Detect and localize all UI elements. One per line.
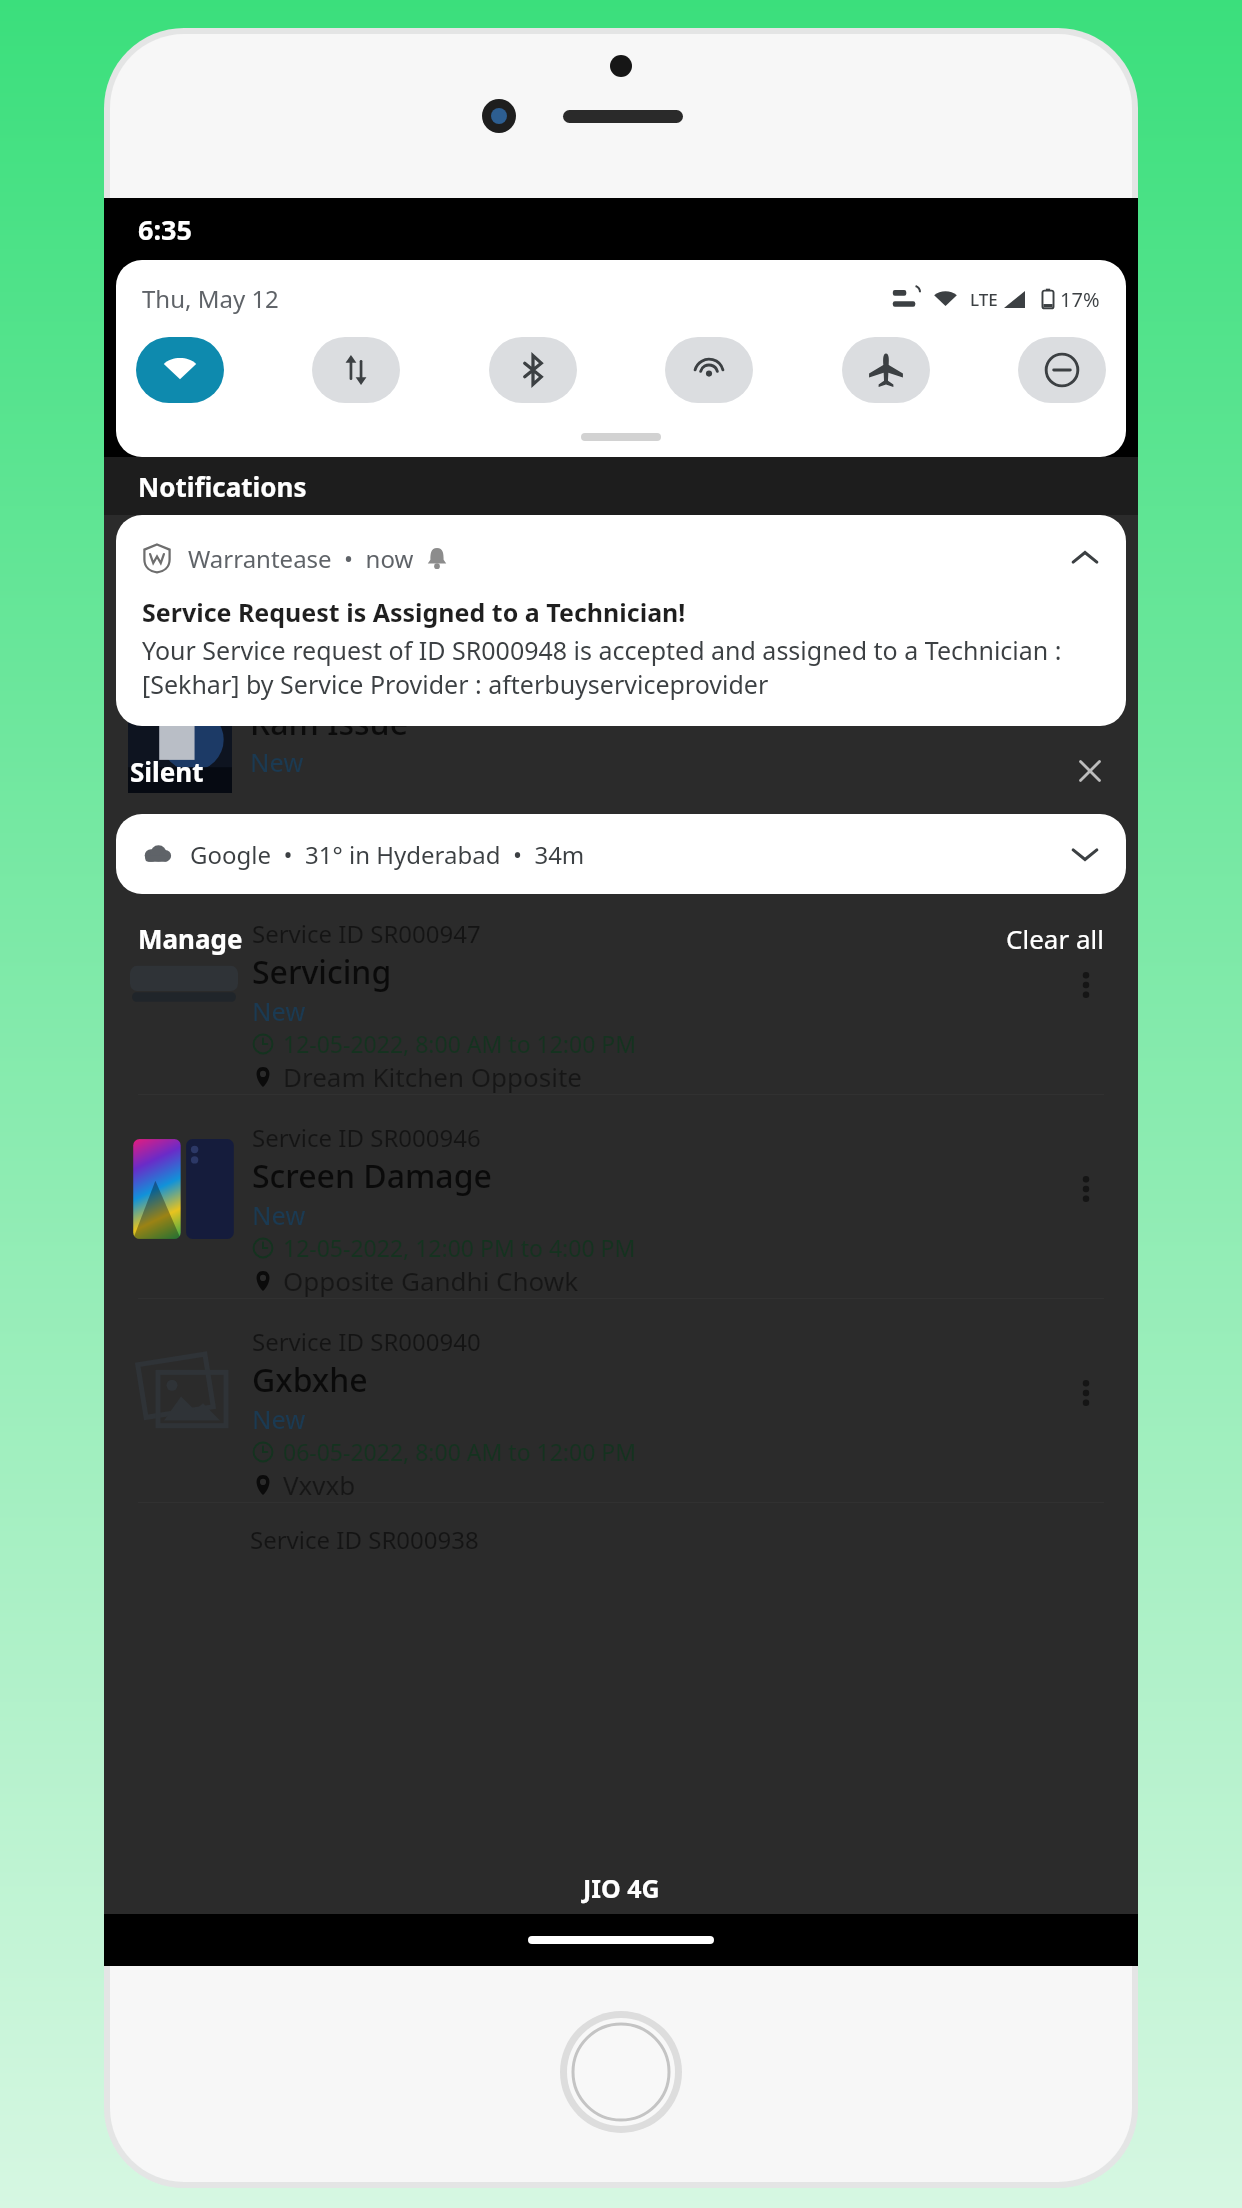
staticText: Opposite Gandhi Chowk (283, 1263, 579, 1298)
button[interactable]: Hotspot (665, 337, 753, 403)
staticText: New (252, 1198, 306, 1232)
staticText: Your Service request of ID SR000948 is a… (142, 633, 1110, 702)
staticText: Google • 31° in Hyderabad • 34m (190, 838, 585, 871)
staticText: Service ID SR000946 (252, 1121, 481, 1154)
staticText: 17% (1060, 286, 1100, 313)
staticText: JIO 4G (583, 1871, 660, 1905)
staticText: Service ID SR000938 (250, 1523, 479, 1556)
staticText: Silent (130, 754, 204, 789)
button[interactable]: Warrantease • now (116, 515, 1126, 726)
button[interactable]: Service ID SR000947 (104, 911, 1138, 1115)
staticText: Clear all (1006, 921, 1104, 956)
button[interactable]: Expand (1060, 829, 1110, 879)
staticText: Servicing (252, 950, 392, 994)
staticText: New (252, 994, 306, 1028)
button[interactable]: Do not disturb (1018, 337, 1106, 403)
button[interactable]: Service ID SR000940 (104, 1319, 1138, 1523)
staticText: 12-05-2022, 8:00 AM to 12:00 PM (283, 1028, 637, 1059)
staticText: Screen Damage (252, 1154, 492, 1198)
staticText: Dream Kitchen Opposite (283, 1059, 582, 1094)
button[interactable]: Mobile data (312, 337, 400, 403)
staticText: New (252, 1402, 306, 1436)
button[interactable]: Airplane mode (842, 337, 930, 403)
staticText: Gxbxhe (252, 1358, 368, 1402)
staticText: Ram Issue (250, 701, 409, 745)
staticText: Service ID SR000948 (250, 668, 479, 701)
staticText: 06-05-2022, 8:00 AM to 12:00 PM (283, 1436, 637, 1467)
button[interactable]: Google • 31° in Hyderabad • 34m (116, 814, 1126, 894)
button[interactable]: Wi-Fi (136, 337, 224, 403)
button[interactable]: Clear all (1006, 921, 1104, 956)
staticText: Service ID SR000940 (252, 1325, 481, 1358)
staticText: LTE (970, 288, 998, 311)
button[interactable]: Collapse (1060, 533, 1110, 583)
staticText: 6:35 (138, 211, 192, 248)
button[interactable]: Service ID SR000946 (104, 1115, 1138, 1319)
staticText: Service ID SR000947 (252, 917, 481, 950)
staticText: New (250, 745, 304, 779)
staticText: Manage (138, 921, 243, 956)
staticText: Thu, May 12 (142, 282, 279, 315)
button[interactable]: Manage (138, 921, 243, 956)
staticText: Notifications (138, 469, 307, 504)
button[interactable]: Dismiss (1062, 743, 1118, 799)
staticText: 12-05-2022, 12:00 PM to 4:00 PM (283, 1232, 636, 1263)
button[interactable]: Bluetooth (489, 337, 577, 403)
staticText: Service ID SR000948 (250, 485, 479, 518)
staticText: Service Request is Assigned to a Technic… (142, 595, 686, 629)
button[interactable]: More options (1058, 911, 1114, 1059)
staticText: Warrantease • now (188, 542, 414, 575)
staticText: Vxvxb (283, 1467, 356, 1502)
